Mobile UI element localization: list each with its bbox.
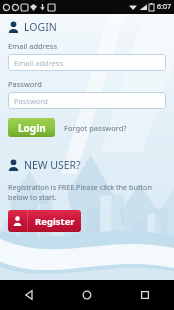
staticText: Password bbox=[14, 96, 48, 106]
button[interactable]: Home bbox=[58, 280, 116, 310]
button[interactable]: Back bbox=[0, 280, 58, 310]
staticText: 6:07 bbox=[157, 2, 171, 12]
staticText: Register bbox=[35, 215, 75, 228]
staticText: NEW USER? bbox=[24, 158, 81, 172]
button[interactable]: Forgot password? bbox=[64, 123, 127, 133]
button[interactable]: Login bbox=[8, 118, 55, 137]
staticText: Password bbox=[8, 79, 42, 89]
staticText: Registration is FREE.Please click the bu… bbox=[8, 182, 152, 202]
button[interactable]: Email address bbox=[8, 54, 166, 71]
staticText: Email address bbox=[14, 58, 64, 68]
staticText: Login bbox=[18, 121, 46, 135]
staticText: Email address bbox=[8, 41, 58, 51]
button[interactable]: Recent apps bbox=[116, 280, 174, 310]
button[interactable]: Register bbox=[8, 210, 81, 232]
staticText: LOGIN bbox=[24, 20, 57, 34]
staticText: Forgot password? bbox=[64, 123, 127, 133]
button[interactable]: Password bbox=[8, 92, 166, 109]
